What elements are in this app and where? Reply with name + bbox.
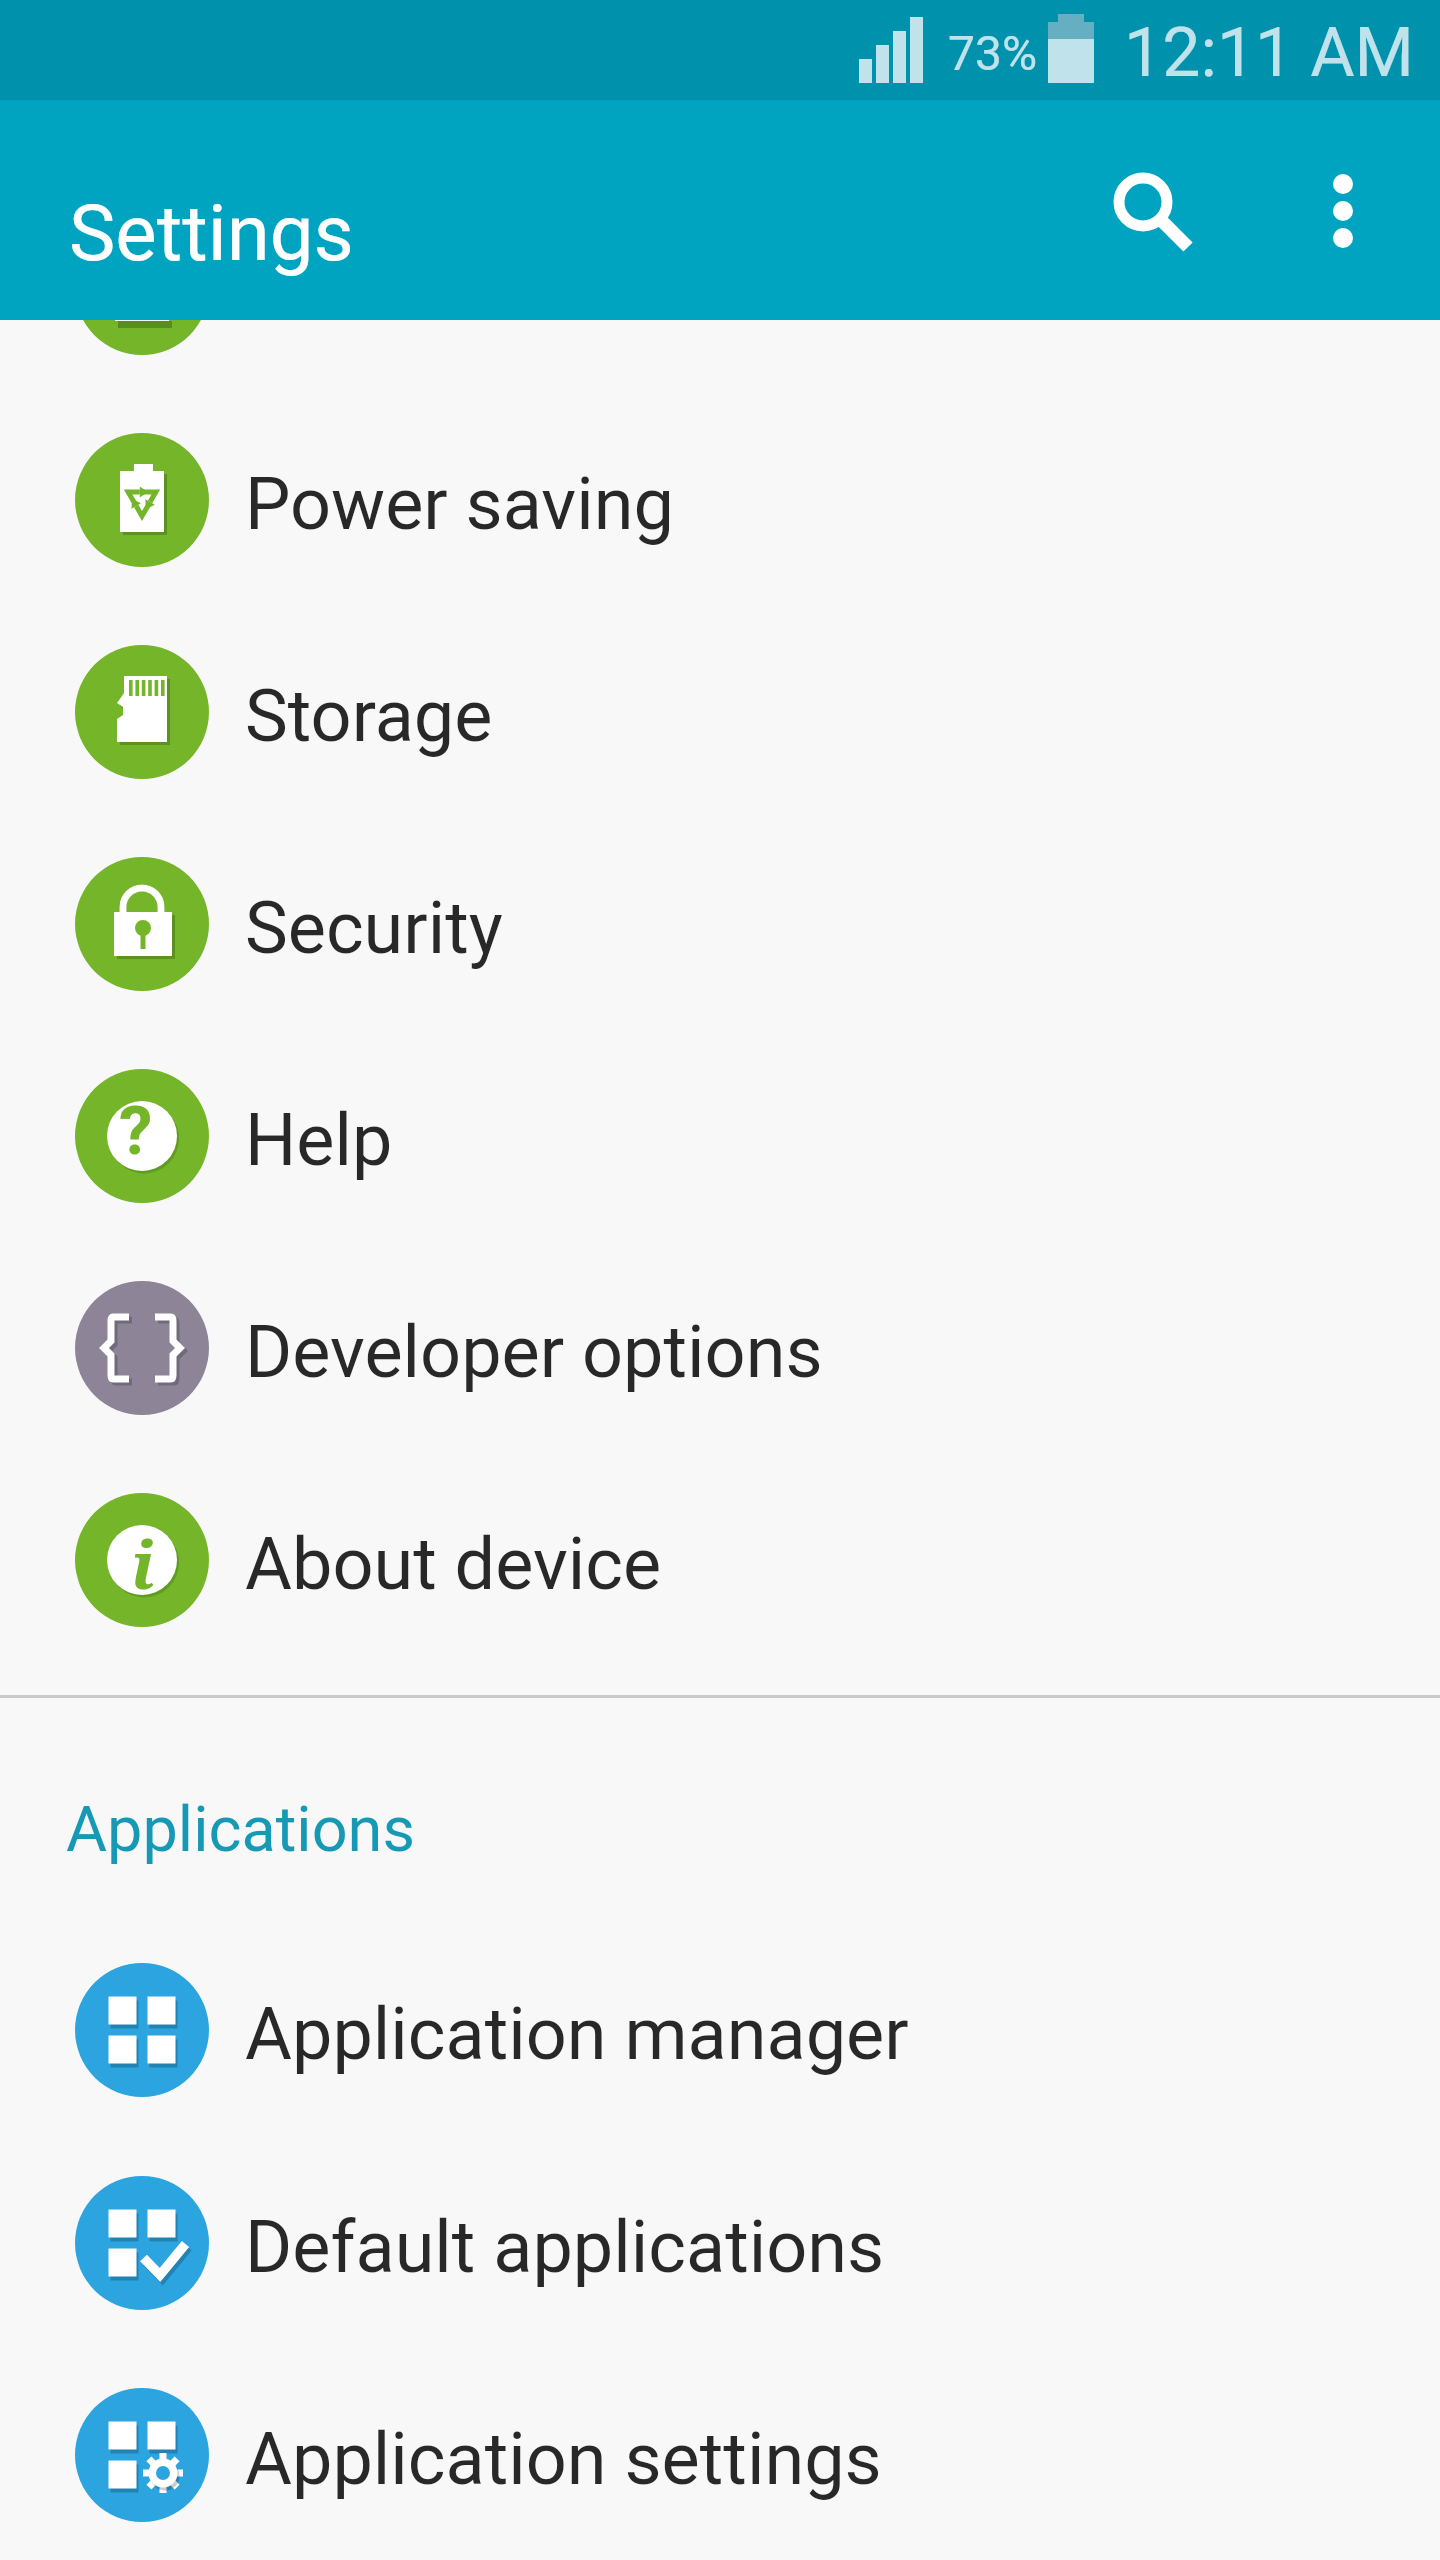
staticText: Default applications: [245, 2205, 885, 2289]
button[interactable]: [1267, 126, 1419, 278]
staticText: Applications: [66, 1793, 415, 1867]
staticText: Developer options: [245, 1310, 823, 1394]
button[interactable]: [1067, 126, 1219, 278]
staticText: Security: [245, 886, 503, 970]
staticText: Storage: [245, 674, 493, 758]
button[interactable]: Application settings: [0, 2349, 1440, 2560]
staticText: 73%: [948, 25, 1038, 81]
button[interactable]: Storage: [0, 606, 1440, 818]
staticText: i: [131, 1518, 155, 1608]
staticText: Help: [245, 1098, 393, 1182]
staticText: ?: [119, 1092, 153, 1171]
staticText: About device: [245, 1522, 662, 1606]
staticText: Power saving: [245, 462, 674, 546]
staticText: 12:11 AM: [1124, 13, 1414, 93]
button[interactable]: Security: [0, 818, 1440, 1030]
staticText: Settings: [69, 188, 354, 279]
button[interactable]: Developer options: [0, 1242, 1440, 1454]
button[interactable]: Power saving: [0, 394, 1440, 606]
button[interactable]: Default applications: [0, 2137, 1440, 2349]
button[interactable]: Help: [0, 1030, 1440, 1242]
staticText: Application settings: [245, 2417, 882, 2501]
button[interactable]: Application manager: [0, 1924, 1440, 2136]
staticText: Application manager: [245, 1992, 909, 2076]
button[interactable]: About device: [0, 1454, 1440, 1666]
